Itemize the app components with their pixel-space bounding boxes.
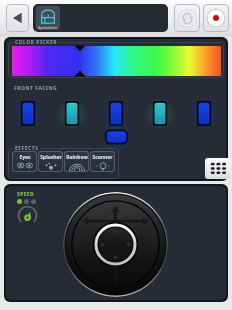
button[interactable]: Speed bbox=[17, 205, 38, 226]
button[interactable] bbox=[102, 129, 131, 145]
button[interactable]: Keypad bbox=[205, 158, 231, 179]
button[interactable] bbox=[19, 100, 37, 127]
staticText: Splasher bbox=[40, 154, 62, 161]
staticText: SPEED bbox=[17, 191, 35, 198]
staticText: Eyes bbox=[19, 154, 31, 161]
button[interactable]: Splasher bbox=[39, 152, 62, 171]
staticText: Rainbow bbox=[66, 154, 88, 161]
button[interactable] bbox=[151, 100, 169, 127]
button[interactable]: Scanner bbox=[91, 152, 114, 171]
button[interactable] bbox=[12, 46, 221, 76]
button[interactable]: Sync bbox=[174, 4, 200, 32]
button[interactable]: Rainbow bbox=[65, 152, 88, 171]
staticText: Scanner bbox=[92, 154, 113, 161]
button[interactable]: Back bbox=[6, 4, 29, 32]
button[interactable]: Speedster bbox=[33, 4, 168, 32]
button[interactable] bbox=[63, 100, 81, 127]
staticText: EFFECTS bbox=[15, 145, 39, 152]
button[interactable] bbox=[107, 100, 125, 127]
staticText: FRONT FACING bbox=[14, 85, 58, 92]
button[interactable]: Record bbox=[203, 4, 229, 32]
button[interactable]: Direction pad bbox=[63, 192, 168, 297]
button[interactable] bbox=[195, 100, 213, 127]
button[interactable]: Eyes bbox=[13, 152, 36, 171]
staticText: Speedster bbox=[38, 25, 58, 30]
staticText: COLOR PICKER bbox=[15, 39, 57, 46]
